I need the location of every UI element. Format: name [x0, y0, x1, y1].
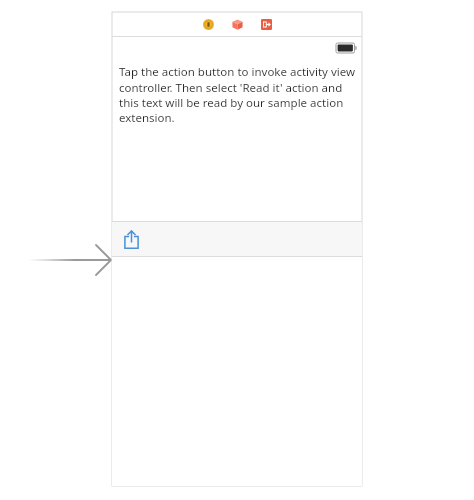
other: Battery full	[336, 43, 357, 53]
button[interactable]: Coin app	[195, 12, 221, 36]
button[interactable]: Extension app	[253, 12, 279, 36]
button[interactable]: Share	[119, 225, 143, 253]
button[interactable]: Package app	[224, 12, 250, 36]
staticText: Tap the action button to invoke activity…	[119, 64, 355, 125]
